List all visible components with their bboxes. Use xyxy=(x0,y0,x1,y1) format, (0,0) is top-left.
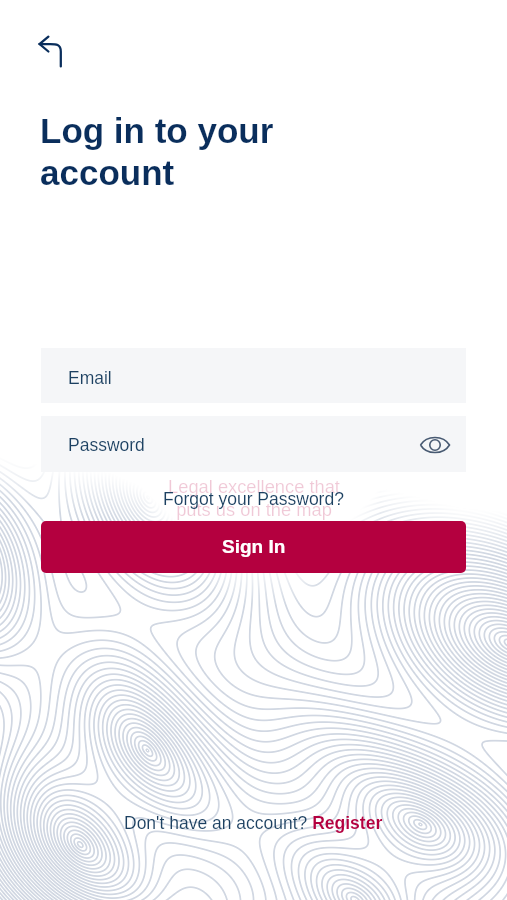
staticText: Password xyxy=(68,435,145,455)
button[interactable]: Forgot your Password? xyxy=(157,486,350,512)
button[interactable]: Sign In xyxy=(41,521,466,573)
staticText: Legal excellence that puts us on the map xyxy=(168,476,340,520)
button[interactable]: Back xyxy=(28,28,74,74)
button[interactable]: Email xyxy=(41,348,466,403)
staticText: Log in to your account xyxy=(40,111,274,192)
staticText: Sign In xyxy=(222,536,286,557)
staticText: Email xyxy=(68,368,112,388)
button[interactable] xyxy=(41,416,466,472)
button[interactable]: Show password xyxy=(416,425,454,463)
button[interactable]: Don't have an account? Register xyxy=(118,810,389,836)
